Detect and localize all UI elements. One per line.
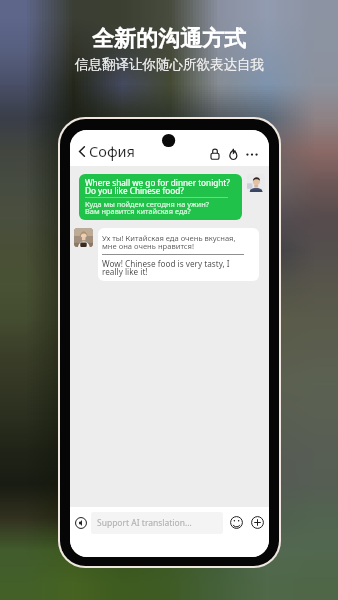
staticText: Ух ты! Китайская еда очень вкусная, [102, 233, 236, 243]
staticText: Where shall we go for dinner tonight? [85, 177, 230, 188]
staticText: Support AI translation... [97, 517, 192, 529]
staticText: Wow! Chinese food is very tasty, I [102, 258, 230, 269]
staticText: мне она очень нравится! [102, 241, 194, 251]
button[interactable]: Add attachment [250, 515, 265, 530]
staticText: really like it! [102, 266, 148, 277]
staticText: София [89, 141, 135, 161]
button[interactable]: Ух ты! Китайская еда очень вкусная, [98, 228, 259, 281]
staticText: Do you like Chinese food? [85, 185, 184, 196]
button[interactable]: Where shall we go for dinner tonight? [79, 174, 242, 220]
staticText: Вам нравится китайская еда? [85, 206, 191, 216]
button[interactable]: София [70, 137, 139, 166]
button[interactable]: Emoji [229, 515, 244, 530]
staticText: Куда мы пойдем сегодня на ужин? [85, 199, 209, 209]
staticText: 信息翻译让你随心所欲表达自我 [75, 56, 264, 73]
button[interactable]: Support AI translation... [91, 512, 223, 534]
button[interactable]: Voice message [73, 515, 89, 531]
button[interactable]: More options [242, 143, 263, 166]
button[interactable]: Disappearing messages [224, 143, 242, 166]
staticText: 全新的沟通方式 [92, 25, 246, 53]
button[interactable]: Encryption [206, 143, 224, 166]
